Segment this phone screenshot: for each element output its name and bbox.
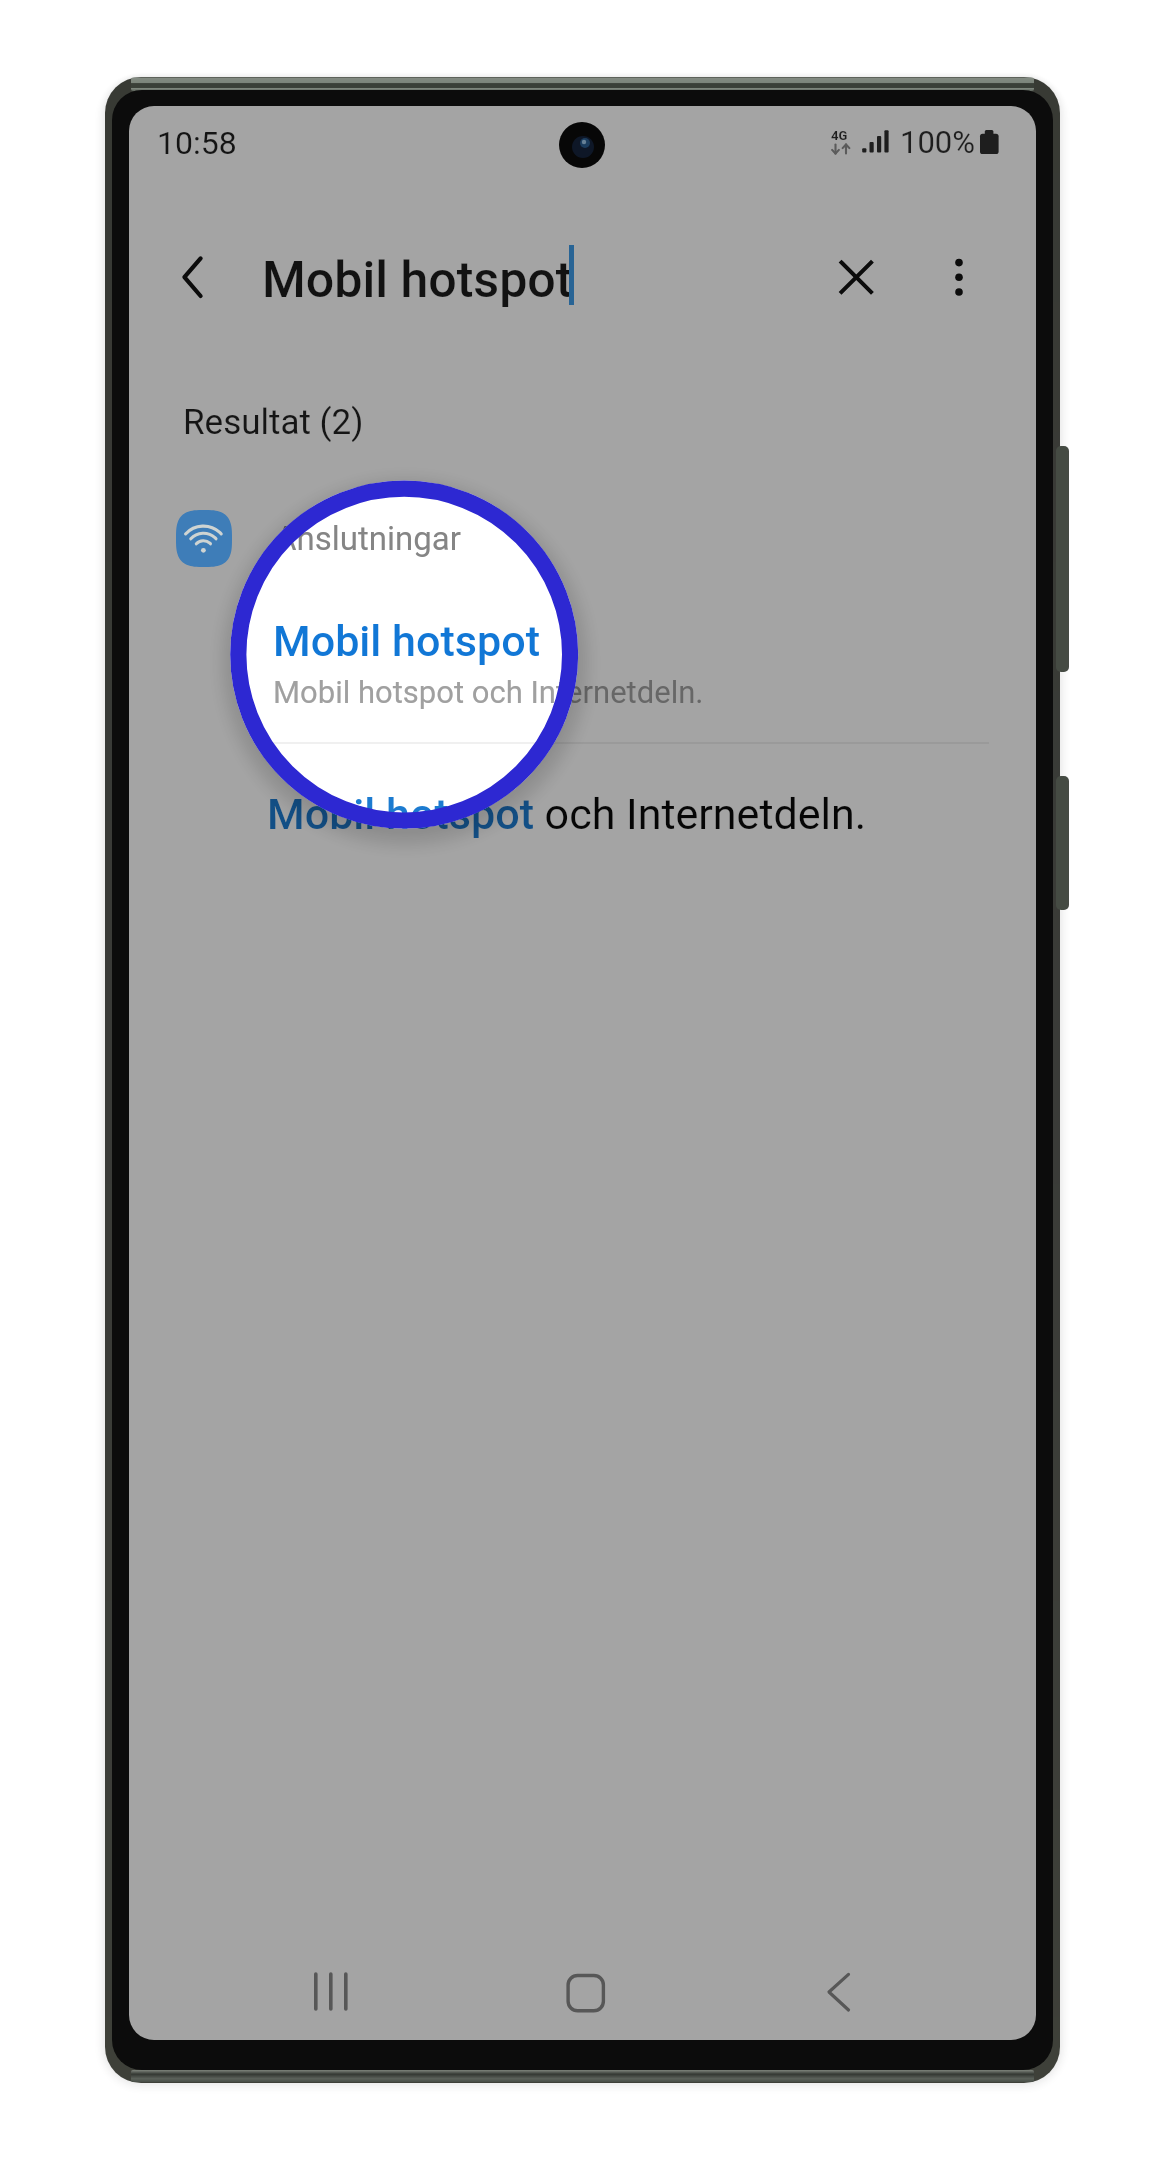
staticText: Mobil hotspot <box>262 251 573 310</box>
staticText: Mobil hotspot <box>273 616 540 666</box>
button[interactable] <box>177 760 988 865</box>
button[interactable]: More options <box>914 232 1004 322</box>
staticText: Mobil hotspot <box>273 616 540 666</box>
staticText: Mobil hotspot och Internetdeln. <box>273 674 704 710</box>
button[interactable]: Home <box>522 1950 648 2034</box>
staticText: Mobil hotspot och Internetdeln. <box>267 789 867 839</box>
staticText: Resultat (2) <box>183 402 364 443</box>
staticText: 4G <box>831 128 848 143</box>
staticText: 10:58 <box>157 124 237 162</box>
staticText: 100% <box>900 124 975 160</box>
staticText: Mobil hotspot och Internetdeln. <box>273 674 704 710</box>
button[interactable]: Clear search <box>811 232 901 322</box>
staticText: Anslutningar <box>275 519 461 558</box>
staticText: Mobil hotspot och Internetdeln. <box>267 789 867 839</box>
staticText: Mobil hotspot <box>262 251 573 310</box>
staticText: Anslutningar <box>275 519 461 558</box>
staticText: 100% <box>900 124 975 160</box>
button[interactable]: Back <box>782 1950 908 2034</box>
button[interactable] <box>177 498 988 741</box>
staticText: 10:58 <box>157 124 237 162</box>
button[interactable]: Navigate up <box>145 232 235 322</box>
button[interactable]: Recent apps <box>270 1950 396 2034</box>
staticText: Resultat (2) <box>183 402 364 443</box>
staticText: 4G <box>831 128 848 143</box>
